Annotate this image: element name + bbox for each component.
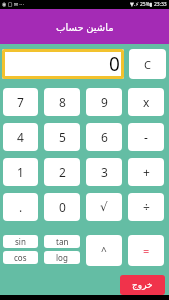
- staticText: 4: [17, 129, 24, 145]
- button[interactable]: 3: [86, 158, 122, 186]
- button[interactable]: خروج: [120, 275, 165, 295]
- staticText: 9: [101, 94, 108, 110]
- button[interactable]: =: [128, 235, 164, 266]
- staticText: ◉ ▢ ✉ ⋯: [2, 1, 25, 8]
- staticText: x: [143, 94, 150, 110]
- button[interactable]: 6: [86, 123, 122, 151]
- staticText: خروج: [132, 280, 153, 290]
- staticText: .: [19, 199, 23, 215]
- staticText: -: [144, 129, 148, 145]
- staticText: ^: [101, 244, 107, 258]
- button[interactable]: 0: [44, 193, 80, 221]
- staticText: 2: [59, 164, 66, 180]
- staticText: =: [143, 243, 150, 258]
- button[interactable]: ÷: [128, 193, 164, 221]
- button[interactable]: .: [3, 193, 38, 221]
- staticText: 3: [101, 164, 108, 180]
- staticText: C: [144, 57, 151, 72]
- button[interactable]: 0: [2, 49, 124, 79]
- button[interactable]: 7: [3, 88, 38, 116]
- button[interactable]: sin: [3, 235, 38, 248]
- staticText: √: [100, 200, 108, 214]
- staticText: +: [143, 164, 150, 180]
- staticText: 8: [59, 94, 66, 110]
- staticText: ▼.⚡ 25%▮ 23:33: [130, 1, 167, 8]
- button[interactable]: log: [44, 251, 80, 264]
- staticText: 5: [59, 129, 66, 145]
- staticText: 7: [17, 94, 24, 110]
- button[interactable]: 5: [44, 123, 80, 151]
- button[interactable]: 8: [44, 88, 80, 116]
- button[interactable]: ^: [86, 235, 122, 266]
- button[interactable]: 2: [44, 158, 80, 186]
- button[interactable]: tan: [44, 235, 80, 248]
- button[interactable]: 9: [86, 88, 122, 116]
- staticText: log: [56, 252, 68, 263]
- button[interactable]: x: [128, 88, 164, 116]
- staticText: 6: [101, 129, 108, 145]
- staticText: ماشین حساب: [56, 20, 114, 34]
- button[interactable]: -: [128, 123, 164, 151]
- staticText: 0: [59, 199, 66, 215]
- button[interactable]: 4: [3, 123, 38, 151]
- staticText: tan: [56, 236, 69, 247]
- button[interactable]: +: [128, 158, 164, 186]
- staticText: 0: [109, 51, 120, 77]
- button[interactable]: 1: [3, 158, 38, 186]
- staticText: 1: [17, 164, 24, 180]
- button[interactable]: √: [86, 193, 122, 221]
- button[interactable]: cos: [3, 251, 38, 264]
- button[interactable]: C: [129, 49, 166, 79]
- staticText: ÷: [143, 199, 150, 215]
- staticText: cos: [14, 252, 27, 263]
- staticText: sin: [15, 236, 26, 247]
